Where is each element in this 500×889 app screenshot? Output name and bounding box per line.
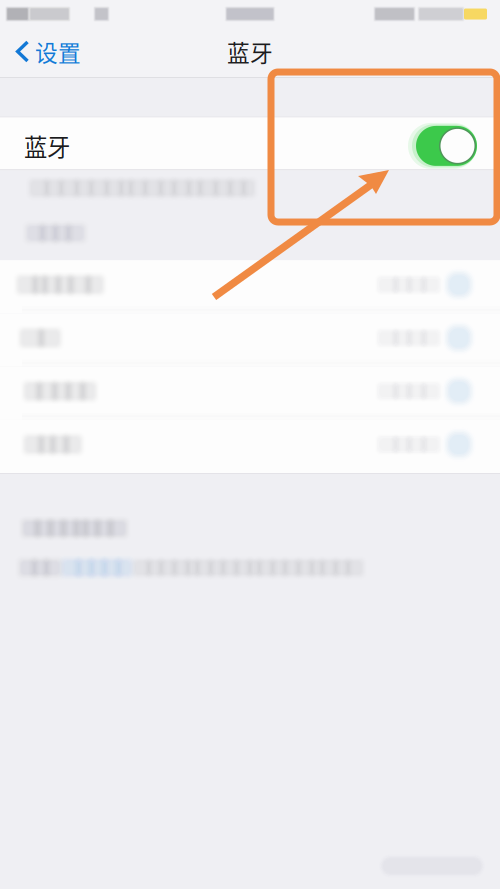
- button[interactable]: 设置: [0, 27, 93, 76]
- button[interactable]: [0, 313, 500, 367]
- staticText: 蓝牙: [24, 129, 70, 163]
- button[interactable]: [0, 260, 500, 313]
- staticText: 设置: [35, 35, 81, 68]
- staticText: 蓝牙: [227, 35, 273, 68]
- button[interactable]: [0, 367, 500, 420]
- button[interactable]: [0, 420, 500, 473]
